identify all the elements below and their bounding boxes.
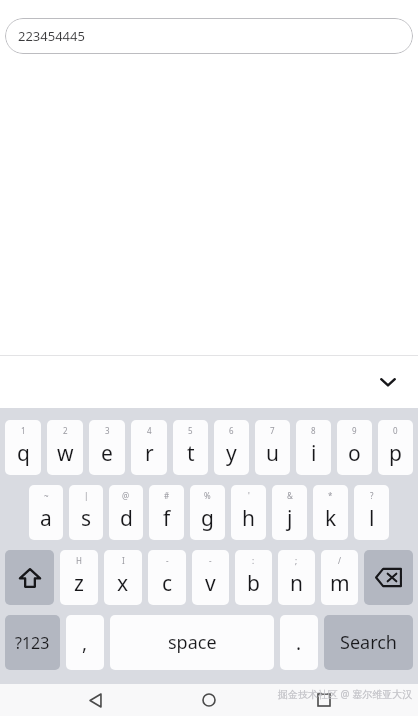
staticText: 掘金技术社区 @ 塞尔维亚大汉 [278, 687, 413, 701]
button[interactable]: H [60, 550, 98, 605]
staticText: ?123 [15, 632, 50, 654]
button[interactable]: / [321, 550, 358, 605]
staticText: % [204, 490, 211, 501]
staticText: 4 [147, 425, 152, 436]
button[interactable]: 6 [214, 420, 249, 475]
staticText: s [81, 504, 92, 533]
button[interactable]: Back [75, 684, 115, 716]
button[interactable]: @ [109, 485, 143, 540]
button[interactable]: I [104, 550, 142, 605]
staticText: . [296, 630, 302, 656]
staticText: b [247, 569, 260, 598]
staticText: j [287, 504, 293, 533]
staticText: i [311, 439, 317, 468]
button[interactable]: Shift [5, 550, 54, 605]
staticText: # [164, 490, 170, 501]
button[interactable]: ' [231, 485, 266, 540]
button[interactable]: ; [278, 550, 315, 605]
button[interactable]: 4 [131, 420, 167, 475]
button[interactable]: - [192, 550, 229, 605]
staticText: y [226, 439, 237, 468]
button[interactable]: % [190, 485, 225, 540]
button[interactable]: Backspace [364, 550, 413, 605]
staticText: 2 [63, 425, 68, 436]
staticText: e [101, 439, 113, 468]
staticText: I [122, 555, 125, 566]
staticText: : [252, 555, 255, 566]
staticText: | [84, 490, 89, 501]
staticText: ~ [44, 490, 49, 501]
staticText: o [348, 439, 361, 468]
button[interactable]: 7 [255, 420, 290, 475]
button[interactable]: - [148, 550, 186, 605]
staticText: ' [248, 490, 250, 501]
staticText: 7 [270, 425, 275, 436]
staticText: , [82, 630, 88, 656]
button[interactable]: , [66, 615, 104, 670]
button[interactable]: Hide keyboard [368, 362, 408, 402]
staticText: H [76, 555, 82, 566]
staticText: 1 [21, 425, 26, 436]
button[interactable]: . [280, 615, 318, 670]
button[interactable]: 223454445 [5, 18, 413, 54]
button[interactable]: 0 [378, 420, 413, 475]
staticText: n [290, 569, 303, 598]
staticText: v [205, 569, 216, 598]
button[interactable]: 2 [47, 420, 83, 475]
staticText: / [338, 555, 341, 566]
button[interactable]: & [272, 485, 307, 540]
staticText: ? [370, 490, 374, 501]
staticText: - [209, 555, 212, 566]
staticText: w [57, 439, 74, 468]
staticText: 0 [393, 425, 398, 436]
button[interactable]: Search [324, 615, 413, 670]
button[interactable]: 1 [5, 420, 41, 475]
staticText: a [40, 504, 52, 533]
staticText: - [166, 555, 169, 566]
staticText: 9 [352, 425, 357, 436]
staticText: p [389, 439, 402, 468]
staticText: f [163, 504, 171, 533]
staticText: c [162, 569, 173, 598]
button[interactable]: Home [189, 684, 229, 716]
button[interactable]: ? [354, 485, 389, 540]
staticText: & [287, 490, 293, 501]
staticText: 223454445 [18, 27, 85, 45]
staticText: space [168, 630, 217, 655]
staticText: l [369, 504, 375, 533]
button[interactable]: * [313, 485, 348, 540]
button[interactable]: # [149, 485, 184, 540]
button[interactable]: 3 [89, 420, 125, 475]
staticText: h [242, 504, 255, 533]
staticText: @ [122, 490, 130, 501]
staticText: 5 [188, 425, 193, 436]
staticText: k [325, 504, 337, 533]
staticText: ; [295, 555, 298, 566]
button[interactable]: Recents [304, 684, 344, 716]
staticText: t [187, 439, 195, 468]
staticText: q [17, 439, 30, 468]
staticText: * [328, 490, 333, 501]
button[interactable]: : [235, 550, 272, 605]
staticText: 3 [105, 425, 110, 436]
button[interactable]: space [110, 615, 274, 670]
staticText: g [201, 504, 214, 533]
button[interactable]: 5 [173, 420, 208, 475]
staticText: z [74, 569, 84, 598]
button[interactable]: ?123 [5, 615, 60, 670]
button[interactable]: 8 [296, 420, 331, 475]
staticText: 6 [229, 425, 234, 436]
staticText: d [120, 504, 133, 533]
staticText: m [330, 569, 350, 598]
staticText: 8 [311, 425, 316, 436]
staticText: r [145, 439, 154, 468]
staticText: u [266, 439, 279, 468]
button[interactable]: 9 [337, 420, 372, 475]
staticText: x [117, 569, 129, 598]
staticText: Search [340, 630, 397, 655]
button[interactable]: ~ [29, 485, 63, 540]
button[interactable]: | [69, 485, 103, 540]
